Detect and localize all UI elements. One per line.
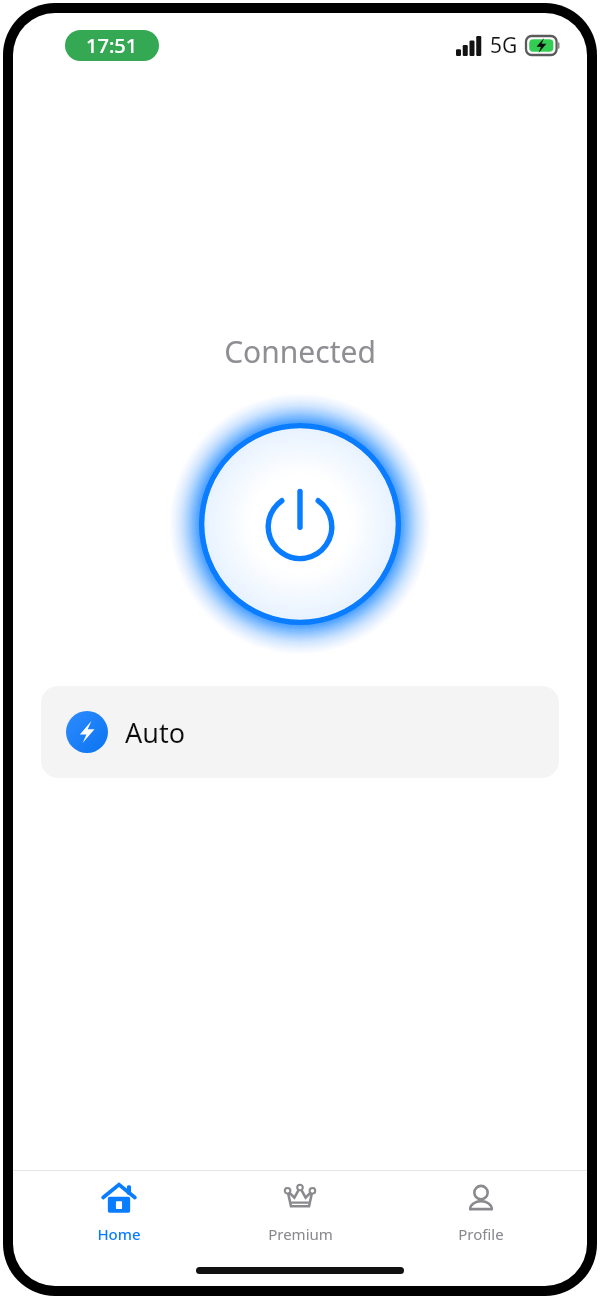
staticText: Connected bbox=[224, 331, 376, 372]
button[interactable]: Home bbox=[44, 1175, 194, 1250]
staticText: Premium bbox=[268, 1224, 333, 1244]
staticText: Profile bbox=[458, 1224, 504, 1244]
button[interactable]: Disconnect VPN bbox=[184, 408, 416, 640]
button[interactable]: Premium bbox=[225, 1175, 375, 1250]
button[interactable]: Profile bbox=[406, 1175, 556, 1250]
button[interactable]: Auto bbox=[41, 686, 559, 778]
staticText: 5G bbox=[490, 31, 518, 60]
staticText: 17:51 bbox=[86, 32, 138, 59]
staticText: Home bbox=[97, 1224, 141, 1244]
staticText: Auto bbox=[125, 714, 186, 751]
